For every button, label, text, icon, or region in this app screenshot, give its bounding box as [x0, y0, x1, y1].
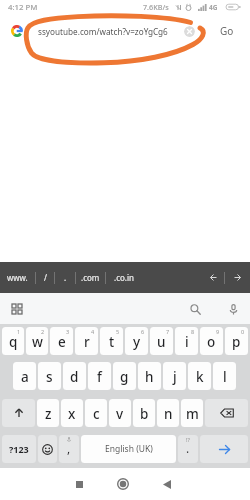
staticText: r: [84, 333, 90, 351]
staticText: a: [21, 368, 29, 386]
staticText: 6: [141, 328, 145, 335]
staticText: 8: [191, 328, 195, 335]
staticText: z: [45, 405, 52, 423]
button[interactable]: Keyboard options: [5, 297, 29, 321]
button[interactable]: Go: [204, 14, 250, 48]
staticText: 9: [216, 328, 220, 335]
staticText: f: [97, 368, 102, 386]
button[interactable]: l: [213, 362, 236, 390]
button[interactable]: ssyoutube.com/watch?v=zoYgCg6: [30, 19, 206, 43]
staticText: .co.in: [114, 272, 134, 283]
button[interactable]: g: [113, 362, 136, 390]
button[interactable]: v: [109, 399, 131, 427]
staticText: 1: [17, 328, 21, 335]
staticText: www.: [7, 272, 28, 283]
button[interactable]: Clear: [184, 26, 195, 37]
button[interactable]: English (UK): [81, 435, 176, 463]
button[interactable]: Next: [225, 262, 250, 293]
staticText: 4G: [209, 3, 218, 12]
button[interactable]: Recents: [62, 471, 96, 497]
button[interactable]: e: [50, 327, 73, 355]
button[interactable]: .: [178, 435, 198, 463]
staticText: .: [64, 272, 67, 283]
button[interactable]: z: [37, 399, 59, 427]
button[interactable]: p: [225, 327, 248, 355]
staticText: u: [157, 333, 166, 351]
staticText: s: [46, 368, 53, 386]
button[interactable]: Search: [183, 297, 207, 321]
staticText: y: [133, 333, 141, 351]
staticText: 0: [241, 328, 245, 335]
button[interactable]: s: [38, 362, 61, 390]
button[interactable]: w: [26, 327, 48, 355]
staticText: e: [58, 333, 66, 351]
button[interactable]: .com: [76, 262, 105, 293]
button[interactable]: k: [188, 362, 211, 390]
button[interactable]: m: [181, 399, 203, 427]
button[interactable]: h: [138, 362, 161, 390]
button[interactable]: c: [85, 399, 107, 427]
staticText: k: [196, 368, 204, 386]
button[interactable]: /: [36, 262, 54, 293]
staticText: n: [164, 405, 173, 423]
staticText: w: [32, 333, 43, 351]
button[interactable]: x: [61, 399, 83, 427]
staticText: 5: [116, 328, 120, 335]
button[interactable]: ,: [59, 435, 79, 463]
staticText: .: [186, 440, 190, 456]
staticText: 4:12 PM: [8, 2, 38, 13]
staticText: ssyoutube.com/watch?v=zoYgCg6: [38, 26, 168, 37]
button[interactable]: i: [175, 327, 198, 355]
button[interactable]: www.: [0, 262, 35, 293]
staticText: t: [109, 333, 115, 351]
button[interactable]: f: [88, 362, 111, 390]
button[interactable]: u: [150, 327, 173, 355]
staticText: .com: [81, 272, 100, 283]
staticText: o: [207, 333, 216, 351]
staticText: v: [116, 405, 124, 423]
button[interactable]: b: [133, 399, 155, 427]
staticText: d: [70, 368, 79, 386]
staticText: English (UK): [105, 443, 153, 455]
staticText: 2: [41, 328, 45, 335]
button[interactable]: j: [163, 362, 186, 390]
staticText: h: [145, 368, 154, 386]
button[interactable]: .: [55, 262, 75, 293]
staticText: !?: [186, 436, 190, 443]
button[interactable]: q: [2, 327, 24, 355]
button[interactable]: r: [75, 327, 98, 355]
button[interactable]: ?123: [2, 435, 36, 463]
staticText: 4: [91, 328, 95, 335]
button[interactable]: Voice input: [221, 297, 245, 321]
staticText: ?123: [9, 443, 29, 455]
staticText: i: [185, 333, 189, 351]
button[interactable]: n: [157, 399, 179, 427]
button[interactable]: o: [200, 327, 223, 355]
button[interactable]: a: [13, 362, 36, 390]
button[interactable]: t: [100, 327, 123, 355]
button[interactable]: Previous: [203, 262, 224, 293]
staticText: /: [44, 272, 47, 283]
staticText: l: [223, 368, 227, 386]
staticText: m: [186, 405, 199, 423]
staticText: g: [120, 368, 129, 386]
staticText: 7.6KB/s: [143, 2, 169, 12]
staticText: q: [9, 333, 18, 351]
button[interactable]: Shift: [2, 399, 35, 427]
button[interactable]: Enter: [200, 435, 248, 463]
button[interactable]: Home: [106, 471, 140, 497]
staticText: Go: [220, 24, 234, 38]
button[interactable]: d: [63, 362, 86, 390]
staticText: p: [232, 333, 241, 351]
button[interactable]: .co.in: [106, 262, 142, 293]
button[interactable]: Emoji: [38, 435, 57, 463]
staticText: ,: [67, 440, 71, 456]
staticText: j: [173, 368, 177, 386]
staticText: 7: [166, 328, 170, 335]
staticText: b: [140, 405, 149, 423]
button[interactable]: y: [125, 327, 148, 355]
staticText: x: [68, 405, 76, 423]
staticText: c: [93, 405, 100, 423]
button[interactable]: Backspace: [205, 399, 248, 427]
button[interactable]: Back: [150, 471, 184, 497]
